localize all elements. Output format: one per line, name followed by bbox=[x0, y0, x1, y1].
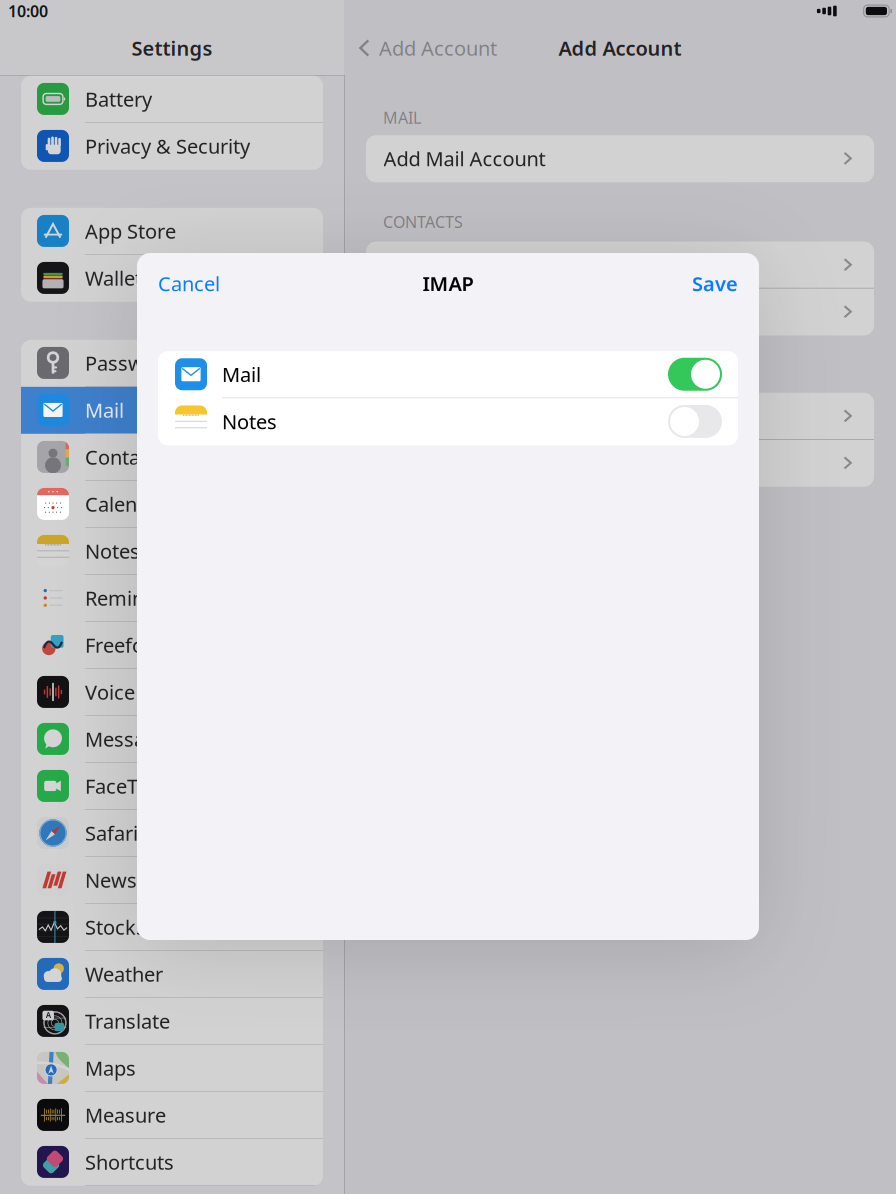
staticText: Shortcuts bbox=[85, 1149, 174, 1175]
staticText: CONTACTS bbox=[383, 211, 463, 232]
button[interactable]: Measure bbox=[21, 1092, 323, 1139]
button[interactable]: Add Account bbox=[344, 26, 497, 70]
button[interactable]: FaceTime bbox=[21, 763, 323, 810]
staticText: IMAP bbox=[422, 270, 473, 297]
button[interactable]: Notes bbox=[21, 528, 323, 575]
button[interactable]: Cancel bbox=[154, 261, 224, 305]
staticText: Add Mail Account bbox=[383, 145, 545, 172]
staticText: Freeform bbox=[85, 632, 171, 658]
staticText: Mail bbox=[85, 397, 124, 423]
button[interactable]: App Store bbox=[21, 208, 323, 255]
staticText: Measure bbox=[85, 1102, 166, 1128]
staticText: App Store bbox=[85, 218, 176, 244]
button[interactable]: Add Mail Account bbox=[366, 135, 874, 182]
staticText: Battery bbox=[85, 86, 152, 112]
button[interactable]: Messages bbox=[21, 716, 323, 763]
staticText: 10:00 bbox=[8, 0, 48, 22]
staticText: Weather bbox=[85, 961, 163, 987]
button[interactable]: Calendar bbox=[21, 481, 323, 528]
staticText: Privacy & Security bbox=[85, 133, 250, 159]
staticText: Settings bbox=[131, 35, 212, 61]
staticText: News bbox=[85, 867, 137, 893]
staticText: Contacts bbox=[85, 444, 167, 470]
staticText: Safari bbox=[85, 820, 138, 846]
button[interactable]: Safari bbox=[21, 810, 323, 857]
button[interactable]: Wallet bbox=[21, 255, 323, 302]
button[interactable]: Voice Memos bbox=[21, 669, 323, 716]
button[interactable]: Add Account bbox=[366, 440, 874, 487]
button[interactable]: Add Account bbox=[366, 288, 874, 335]
button[interactable]: Maps bbox=[21, 1045, 323, 1092]
button[interactable]: Stocks bbox=[21, 904, 323, 951]
staticText: A bbox=[46, 1010, 51, 1020]
staticText: Save bbox=[692, 270, 738, 297]
staticText: Add Account bbox=[379, 35, 497, 61]
staticText: Add Account bbox=[558, 35, 681, 61]
staticText: Calendar bbox=[85, 491, 168, 517]
staticText: Notes bbox=[222, 408, 277, 435]
button[interactable]: Passwords bbox=[21, 340, 323, 387]
staticText: Reminders bbox=[85, 585, 185, 611]
button[interactable]: iCloud bbox=[366, 393, 874, 440]
staticText: iCloud bbox=[383, 251, 442, 278]
staticText: Cancel bbox=[158, 270, 220, 297]
button[interactable]: Mail bbox=[158, 351, 738, 398]
staticText: Translate bbox=[85, 1008, 170, 1034]
button[interactable]: Mail bbox=[21, 387, 323, 434]
button[interactable]: iCloud bbox=[366, 241, 874, 288]
staticText: FaceTime bbox=[85, 773, 173, 799]
staticText: Wallet bbox=[85, 265, 142, 291]
button[interactable]: Weather bbox=[21, 951, 323, 998]
button[interactable]: News bbox=[21, 857, 323, 904]
button[interactable]: Battery bbox=[21, 76, 323, 123]
staticText: Passwords bbox=[85, 350, 186, 376]
button[interactable]: Contacts bbox=[21, 434, 323, 481]
staticText: Messages bbox=[85, 726, 178, 752]
button[interactable]: Notes bbox=[158, 398, 738, 445]
button[interactable]: Privacy & Security bbox=[21, 123, 323, 170]
staticText: Notes bbox=[85, 538, 140, 564]
staticText: Maps bbox=[85, 1055, 136, 1081]
staticText: Mail bbox=[222, 361, 261, 388]
button[interactable]: Save bbox=[688, 261, 742, 305]
button[interactable]: Freeform bbox=[21, 622, 323, 669]
staticText: MAIL bbox=[383, 107, 421, 128]
button[interactable]: Reminders bbox=[21, 575, 323, 622]
staticText: Stocks bbox=[85, 914, 146, 940]
staticText: Voice Memos bbox=[85, 679, 210, 705]
button[interactable]: A bbox=[21, 998, 323, 1045]
button[interactable]: Shortcuts bbox=[21, 1139, 323, 1186]
